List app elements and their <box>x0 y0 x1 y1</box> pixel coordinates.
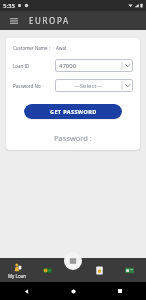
button[interactable]: Navigation item <box>34 265 60 275</box>
staticText: Password No <box>13 83 41 89</box>
button[interactable]: GET PASSWORD <box>24 104 122 119</box>
button[interactable]: Back <box>20 285 32 297</box>
button[interactable]: 47000 <box>55 59 133 72</box>
button[interactable]: ---Select--- <box>55 79 133 92</box>
staticText: Customer Name : <box>13 45 50 51</box>
staticText: My Loan <box>8 273 26 279</box>
staticText: Loan ID <box>13 63 30 69</box>
button[interactable]: Navigation item <box>116 265 142 275</box>
button[interactable]: Navigation item <box>86 265 112 275</box>
staticText: GET PASSWORD <box>50 108 97 115</box>
button[interactable]: Open navigation menu <box>7 14 20 27</box>
button[interactable]: Recent apps <box>114 285 126 297</box>
button[interactable]: More menu <box>64 252 82 270</box>
staticText: Awal <box>56 45 67 51</box>
staticText: 5:35 <box>3 2 15 10</box>
staticText: EUROPA <box>29 15 70 26</box>
staticText: 47000 <box>59 62 77 70</box>
staticText: Password : <box>54 133 92 143</box>
button[interactable]: My Loan <box>4 262 30 279</box>
button[interactable]: Home <box>67 285 79 297</box>
staticText: ---Select--- <box>74 82 103 90</box>
